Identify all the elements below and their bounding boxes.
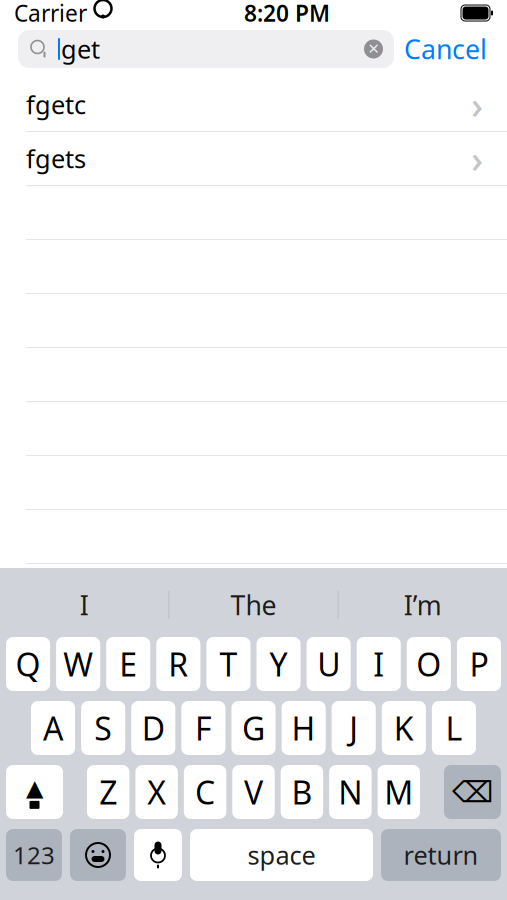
button[interactable]: G [231,701,275,755]
staticText: M [384,771,413,813]
staticText: › [471,80,483,129]
button[interactable]: C [184,765,226,819]
button[interactable]: K [382,701,426,755]
button[interactable]: Shift [6,765,63,819]
button[interactable]: I [357,637,401,691]
button[interactable]: T [206,637,250,691]
button[interactable]: Cancel [394,30,497,68]
staticText: I [80,587,89,623]
staticText: ✕ [367,41,379,57]
button[interactable]: P [457,637,501,691]
staticText: fgetc [26,88,86,121]
button[interactable]: N [329,765,371,819]
button[interactable]: R [156,637,200,691]
staticText: Y [270,643,288,685]
staticText: Z [99,771,117,813]
button[interactable]: Q [6,637,50,691]
staticText: I [373,643,384,685]
button[interactable]: space [190,829,373,881]
button[interactable]: Dictation [134,829,182,881]
staticText: ▲ [26,775,43,801]
button[interactable]: Backspace [444,765,501,819]
button[interactable]: D [131,701,175,755]
staticText: A [43,707,63,749]
staticText: 8:20 PM [244,0,330,28]
staticText: E [119,643,137,685]
button[interactable]: M [378,765,420,819]
button[interactable]: fgets [0,132,507,186]
button[interactable]: Y [256,637,301,691]
staticText: U [317,643,340,685]
staticText: I’m [404,587,442,623]
staticText: get [61,32,100,66]
staticText: W [63,643,93,685]
staticText: H [292,707,316,749]
button[interactable]: The [169,579,338,631]
staticText: Cancel [404,31,487,67]
button[interactable]: fgetc [0,78,507,132]
staticText: L [445,707,462,749]
staticText: G [242,707,265,749]
staticText: return [403,838,478,872]
staticText: P [469,643,488,685]
button[interactable]: H [282,701,326,755]
staticText: The [230,587,276,623]
button[interactable]: Emoji keyboard [70,829,126,881]
staticText: 123 [13,839,55,871]
button[interactable]: L [432,701,476,755]
staticText: T [219,643,237,685]
button[interactable]: S [81,701,125,755]
staticText: D [142,707,165,749]
button[interactable]: U [307,637,351,691]
staticText: X [147,771,166,813]
staticText: Carrier [14,0,87,28]
staticText: Q [15,643,40,685]
staticText: F [195,707,212,749]
button[interactable]: W [56,637,100,691]
button[interactable]: X [135,765,178,819]
button[interactable]: 123 [6,829,62,881]
staticText: K [394,707,414,749]
staticText: › [471,134,483,183]
staticText: S [94,707,112,749]
staticText: V [244,771,263,813]
button[interactable]: O [407,637,451,691]
button[interactable]: B [281,765,323,819]
staticText: B [291,771,312,813]
button[interactable]: E [106,637,150,691]
button[interactable]: V [232,765,275,819]
staticText: O [416,643,441,685]
button[interactable]: F [181,701,225,755]
staticText: C [195,771,215,813]
staticText: ⌫ [452,775,493,809]
button[interactable]: return [381,829,501,881]
staticText: N [338,771,362,813]
button[interactable]: J [332,701,376,755]
staticText: J [349,707,358,749]
button[interactable]: I’m [339,579,507,631]
staticText: R [168,643,188,685]
staticText: space [247,838,315,872]
button[interactable]: I [0,579,168,631]
button[interactable]: A [31,701,75,755]
button[interactable]: Z [87,765,129,819]
button[interactable]: Clear text [364,39,394,58]
staticText: fgets [26,142,86,175]
